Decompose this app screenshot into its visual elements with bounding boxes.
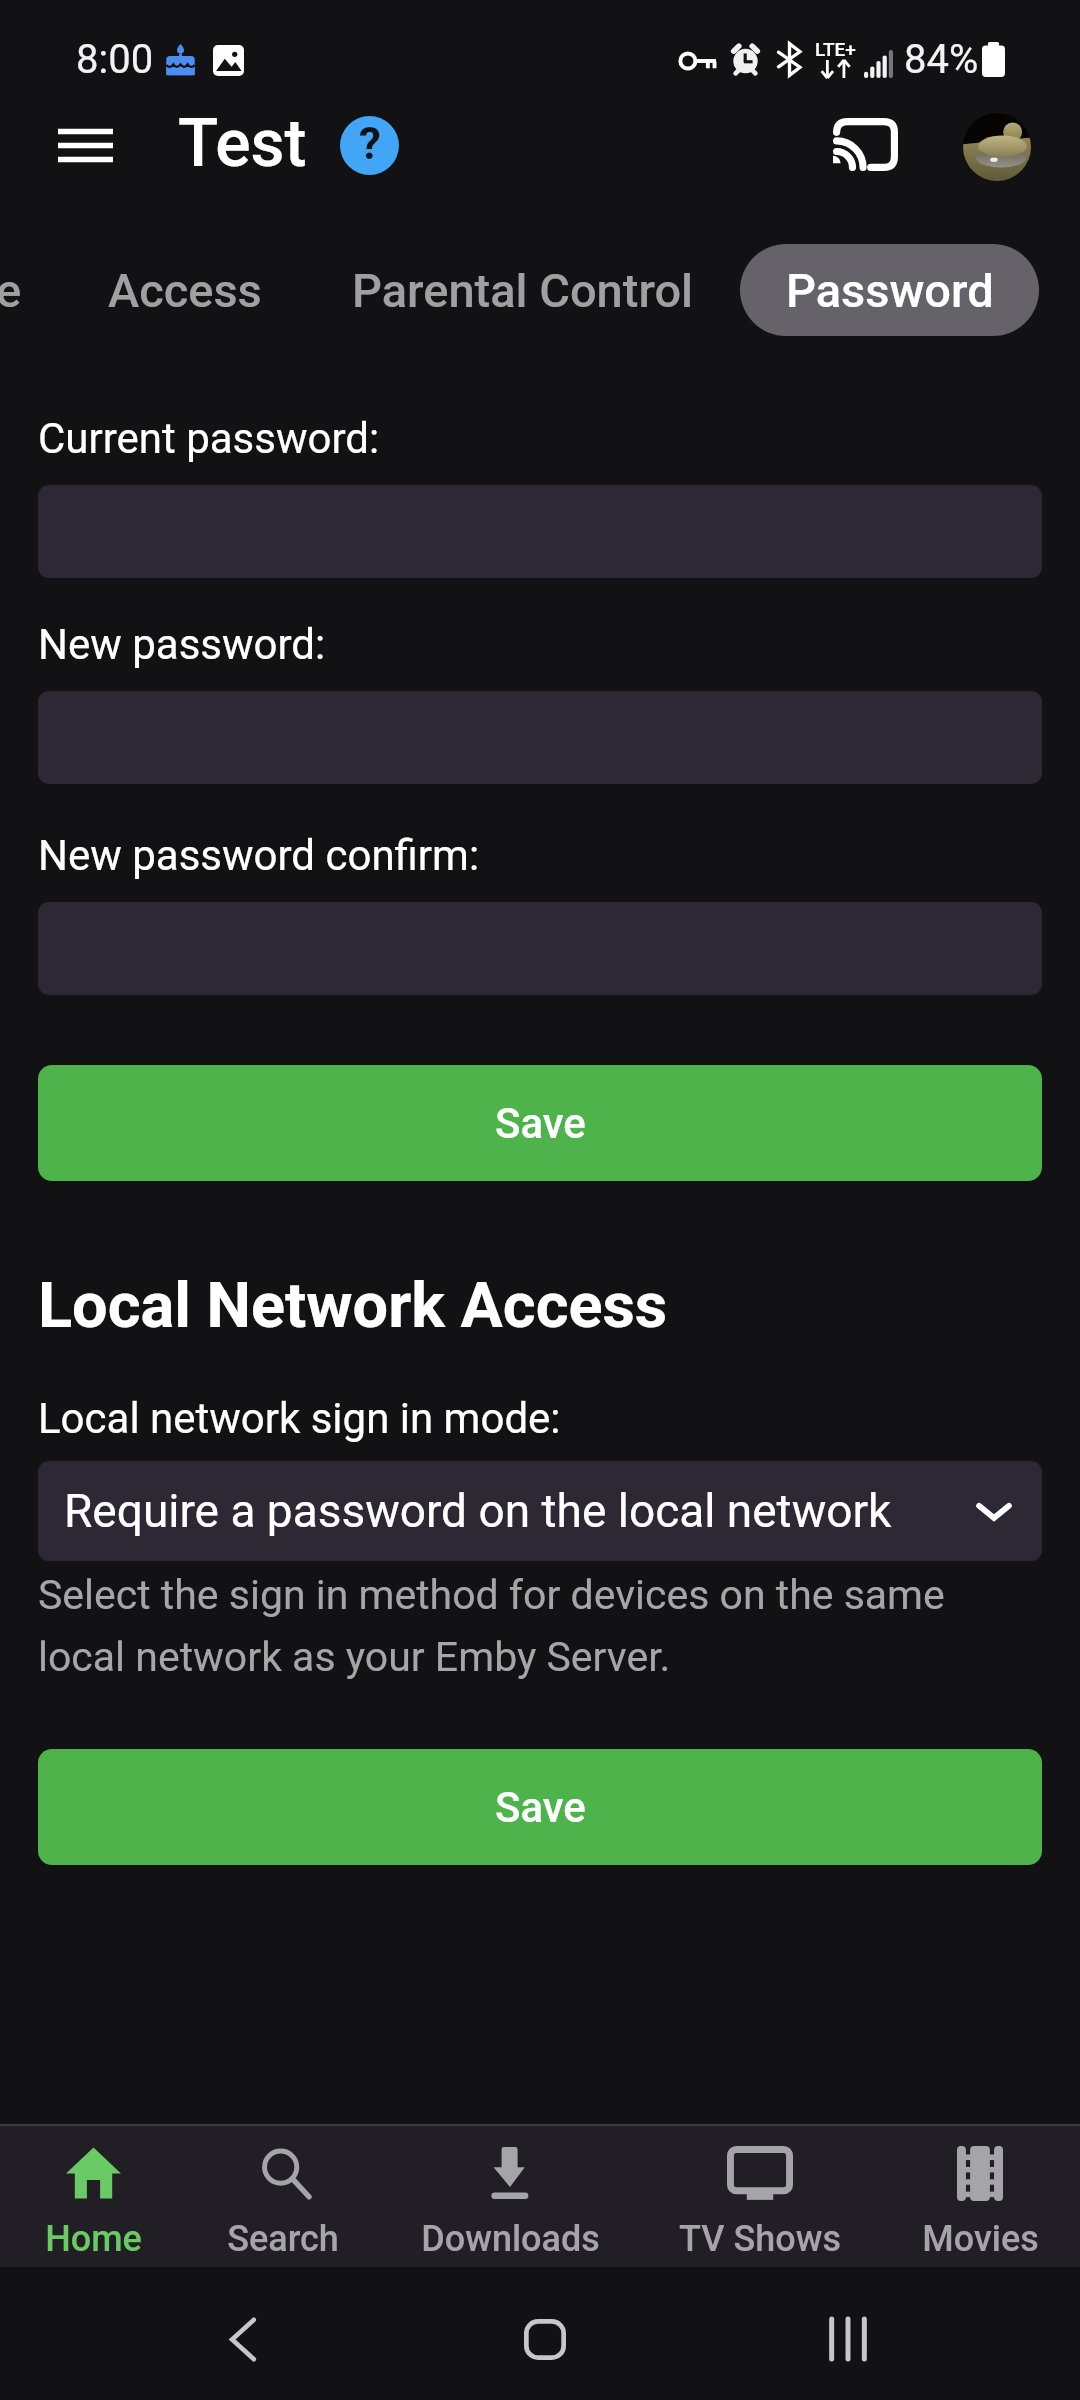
button[interactable]: Menu bbox=[33, 101, 137, 189]
staticText: Local Network Access bbox=[38, 1269, 668, 1343]
staticText: Select the sign in method for devices on… bbox=[38, 1571, 1042, 1681]
staticText: ? bbox=[359, 118, 381, 170]
staticText: Require a password on the local network bbox=[64, 1484, 892, 1538]
button[interactable]: Recent apps bbox=[808, 2299, 888, 2379]
staticText: Current password: bbox=[38, 414, 380, 463]
button[interactable]: Cast bbox=[821, 100, 909, 188]
button[interactable]: Parental Control bbox=[313, 229, 733, 351]
button[interactable]: Downloads bbox=[380, 2126, 640, 2267]
staticText: New password confirm: bbox=[38, 831, 480, 880]
staticText: Downloads bbox=[421, 2218, 600, 2260]
staticText: TV Shows bbox=[679, 2218, 841, 2260]
staticText: 8:00 bbox=[76, 36, 154, 83]
staticText: Save bbox=[495, 1783, 586, 1832]
button[interactable]: Local network sign in mode bbox=[38, 1461, 1042, 1561]
staticText: Password bbox=[786, 263, 994, 318]
button[interactable]: Profile bbox=[963, 113, 1031, 181]
staticText: Search bbox=[227, 2218, 339, 2260]
staticText: Home bbox=[45, 2218, 142, 2260]
button[interactable]: Save bbox=[38, 1065, 1042, 1181]
button[interactable]: Home bbox=[0, 2126, 186, 2267]
staticText: 84% bbox=[904, 36, 979, 83]
staticText: Save bbox=[495, 1099, 586, 1148]
staticText: Local network sign in mode: bbox=[38, 1394, 561, 1443]
staticText: New password: bbox=[38, 620, 326, 669]
staticText: Movies bbox=[922, 2218, 1039, 2260]
button[interactable]: Search bbox=[186, 2126, 380, 2267]
button[interactable]: e bbox=[0, 229, 22, 351]
button[interactable]: Help bbox=[340, 116, 399, 175]
button[interactable]: Password bbox=[740, 244, 1039, 336]
staticText: e bbox=[0, 263, 22, 318]
button[interactable]: Save bbox=[38, 1749, 1042, 1865]
button[interactable]: Access bbox=[69, 229, 301, 351]
staticText: Parental Control bbox=[352, 263, 694, 318]
staticText: Access bbox=[108, 263, 262, 318]
staticText: LTE+ bbox=[815, 38, 856, 60]
button[interactable]: Back bbox=[203, 2299, 283, 2379]
button[interactable]: Movies bbox=[880, 2126, 1080, 2267]
button[interactable]: TV Shows bbox=[640, 2126, 880, 2267]
staticText: Test bbox=[178, 105, 307, 182]
button[interactable]: Home bbox=[505, 2299, 585, 2379]
